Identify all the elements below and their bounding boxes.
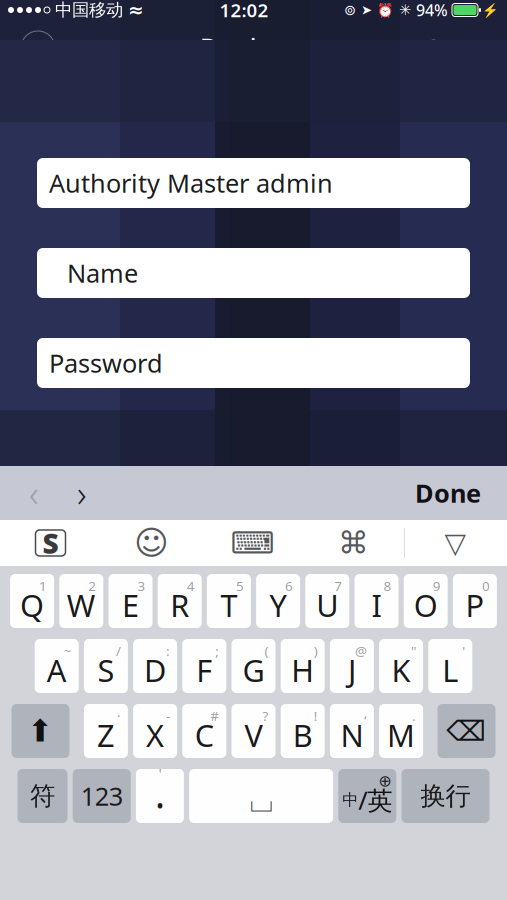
staticText: G — [242, 650, 264, 690]
button[interactable]: Space — [189, 769, 333, 823]
staticText: S — [97, 650, 114, 690]
button[interactable]: 5 — [207, 574, 251, 628]
button[interactable]: Save — [412, 26, 495, 70]
staticText: ' — [158, 764, 161, 783]
button[interactable]: / — [84, 639, 128, 693]
button[interactable]: Hide keyboard — [404, 520, 507, 566]
staticText: R — [170, 585, 189, 625]
staticText: ⌫ — [446, 715, 486, 747]
staticText: E — [122, 585, 139, 625]
button[interactable]: Previous field — [10, 466, 58, 520]
staticText: ‹ — [29, 469, 39, 517]
button[interactable]: 符 — [17, 769, 67, 823]
button[interactable]: · — [84, 704, 128, 758]
staticText: ، — [363, 707, 367, 722]
button[interactable]: ; — [182, 639, 226, 693]
staticText: ⊕ — [378, 772, 391, 790]
staticText: " — [411, 642, 416, 660]
staticText: ▽ — [444, 527, 466, 559]
button[interactable]: @ — [330, 639, 374, 693]
button[interactable]: Name — [37, 248, 470, 298]
staticText: 3 — [137, 577, 145, 595]
button[interactable]: Authority Master admin — [37, 158, 470, 208]
button[interactable]: ، — [330, 704, 374, 758]
button[interactable]: 3 — [108, 574, 152, 628]
staticText: ⌴ — [250, 788, 273, 817]
staticText: K — [392, 650, 411, 690]
button[interactable]: Delete — [437, 704, 495, 758]
button[interactable]: Password — [37, 338, 470, 388]
staticText: / — [116, 642, 121, 660]
staticText: 符 — [30, 780, 55, 811]
button[interactable]: Done — [397, 466, 499, 520]
staticText: Password — [49, 346, 163, 380]
staticText: 8 — [383, 577, 391, 595]
button[interactable]: 7 — [305, 574, 349, 628]
staticText: S — [42, 524, 58, 562]
staticText: ⊚ — [344, 2, 356, 18]
button[interactable]: Shift — [11, 704, 69, 758]
staticText: - — [166, 707, 170, 725]
button[interactable]: Keyboard layout — [202, 520, 303, 566]
button[interactable]: 1 — [10, 574, 54, 628]
staticText: ⌘ — [338, 526, 369, 560]
staticText: ? — [262, 707, 268, 725]
button[interactable]: More — [303, 520, 404, 566]
button[interactable]: Next field — [58, 466, 106, 520]
button[interactable]: # — [182, 704, 226, 758]
button[interactable]: 6 — [256, 574, 300, 628]
staticText: : — [166, 642, 170, 660]
button[interactable]: Emoji — [101, 520, 202, 566]
staticText: 5 — [236, 577, 244, 595]
staticText: 换行 — [420, 780, 470, 811]
button[interactable]: ! — [281, 704, 325, 758]
staticText: W — [67, 585, 96, 625]
button[interactable]: Switch Chinese English — [338, 769, 396, 823]
staticText: F — [196, 650, 212, 690]
button[interactable]: 9 — [404, 574, 448, 628]
button[interactable]: ) — [281, 639, 325, 693]
staticText: Done — [415, 476, 481, 510]
button[interactable]: . — [379, 704, 423, 758]
button[interactable]: ( — [231, 639, 275, 693]
button[interactable]: 123 — [73, 769, 131, 823]
staticText: ⚡ — [482, 2, 499, 18]
staticText: V — [244, 715, 262, 755]
staticText: X — [146, 715, 164, 755]
staticText: 12:02 — [219, 0, 268, 22]
button[interactable]: 2 — [59, 574, 103, 628]
staticText: 中国移动 — [55, 0, 123, 21]
button[interactable]: ~ — [35, 639, 79, 693]
button[interactable]: Period — [136, 769, 184, 823]
button[interactable]: - — [133, 704, 177, 758]
button[interactable]: 换行 — [401, 769, 489, 823]
staticText: ( — [264, 642, 268, 660]
staticText: ☺ — [134, 524, 169, 562]
button[interactable]: ' — [428, 639, 472, 693]
button[interactable]: 8 — [354, 574, 398, 628]
staticText: L — [442, 650, 458, 690]
staticText: ' — [462, 642, 465, 660]
button[interactable]: 0 — [453, 574, 497, 628]
button[interactable]: 4 — [158, 574, 202, 628]
button[interactable]: : — [133, 639, 177, 693]
staticText: Register — [199, 29, 307, 67]
button[interactable]: " — [379, 639, 423, 693]
staticText: Save — [426, 31, 481, 65]
button[interactable]: Sogou menu — [0, 520, 101, 566]
button[interactable]: ? — [231, 704, 275, 758]
staticText: T — [220, 585, 237, 625]
staticText: Q — [20, 585, 44, 625]
staticText: H — [291, 650, 314, 690]
staticText: . — [412, 707, 416, 725]
staticText: Authority Master admin — [49, 166, 333, 200]
button[interactable]: Back — [12, 26, 64, 70]
staticText: M — [387, 715, 415, 755]
staticText: J — [348, 650, 356, 690]
staticText: 0 — [482, 577, 490, 595]
staticText: D — [144, 650, 166, 690]
staticText: ; — [215, 642, 219, 660]
staticText: # — [210, 707, 219, 725]
staticText: U — [316, 585, 338, 625]
staticText: ⬆ — [27, 714, 53, 748]
